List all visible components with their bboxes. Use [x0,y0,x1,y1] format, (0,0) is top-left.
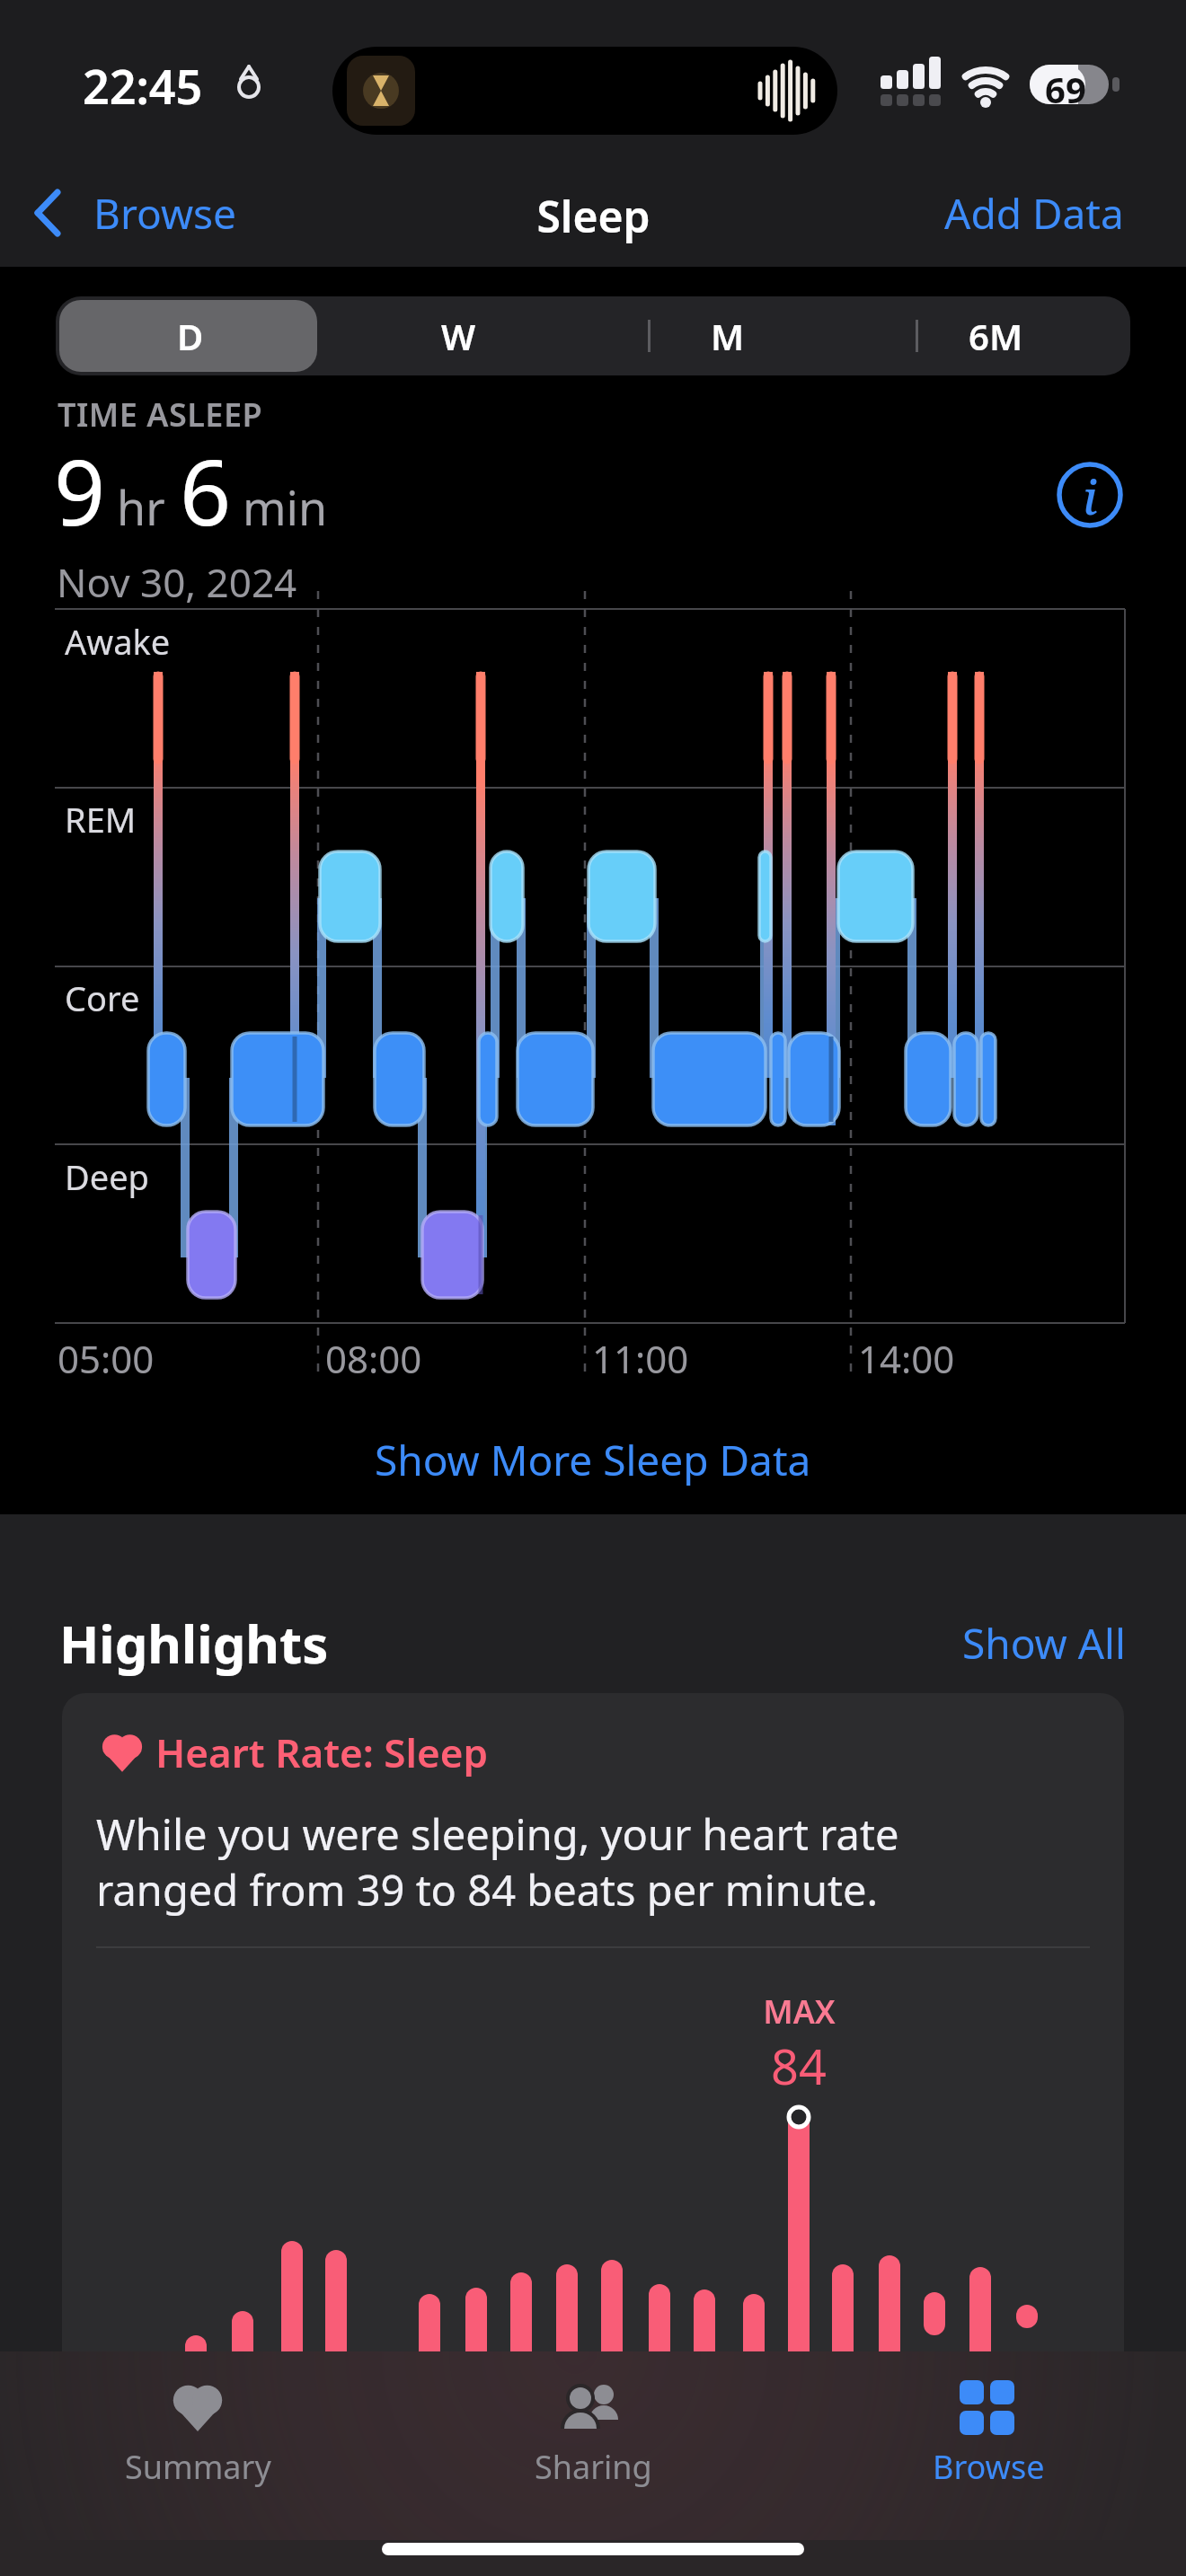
button[interactable]: Heart Rate: Sleep [62,1693,1124,2576]
button[interactable]: Browse [791,2351,1186,2489]
staticText: 6 [180,429,232,551]
staticText: Awake [65,618,171,665]
staticText: W [441,312,476,360]
staticText: Add Data [944,185,1124,242]
staticText: 08:00 [325,1333,422,1384]
staticText: hr [117,475,165,539]
button[interactable]: W [324,296,593,375]
staticText: 05:00 [58,1333,155,1384]
button[interactable]: D [56,296,324,375]
staticText: TIME ASLEEP [58,393,263,437]
staticText: min [243,475,328,539]
button[interactable]: Summary [0,2351,395,2489]
staticText: While you were sleeping, your heart rate [96,1805,899,1863]
button[interactable]: Browse [27,178,252,248]
button[interactable]: 6M [862,296,1130,375]
staticText: Browse [93,185,237,242]
staticText: 84 [771,2033,827,2099]
staticText: Core [65,975,140,1021]
staticText: Deep [65,1153,149,1200]
button[interactable]: M [593,296,862,375]
button[interactable]: Add Data [936,178,1132,248]
staticText: 69 [1045,65,1086,113]
staticText: 11:00 [592,1333,689,1384]
staticText: Show More Sleep Data [375,1432,811,1488]
staticText: REM [65,796,137,842]
staticText: Heart Rate: Sleep [155,1725,489,1779]
button[interactable]: Sharing [395,2351,791,2489]
staticText: Sleep [536,187,651,245]
staticText: Summary [125,2445,271,2489]
staticText: i [1083,464,1098,525]
staticText: MAX [763,1989,836,2033]
staticText: 22:45 [83,54,203,118]
staticText: Show All [962,1615,1126,1669]
staticText: M [711,312,745,360]
staticText: Browse [933,2445,1045,2489]
button[interactable]: Show More Sleep Data [323,1419,863,1500]
staticText: Nov 30, 2024 [57,555,297,609]
staticText: 9 [54,429,106,551]
staticText: 6M [969,312,1023,360]
staticText: Sharing [535,2445,652,2489]
staticText: Highlights [59,1608,329,1679]
staticText: D [177,312,204,360]
staticText: 14:00 [858,1333,955,1384]
button[interactable]: Show All [898,1615,1126,1669]
staticText: ranged from 39 to 84 beats per minute. [96,1861,879,1919]
